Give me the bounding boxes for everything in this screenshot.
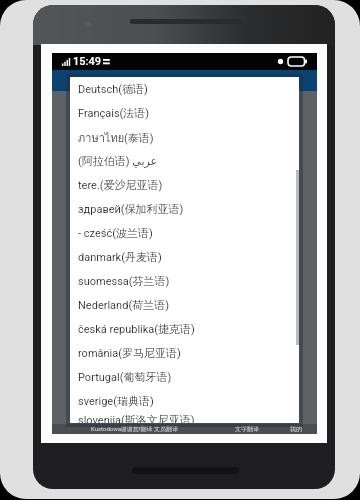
button[interactable]: românia(罗马尼亚语): [70, 341, 299, 365]
button[interactable]: 我的: [275, 424, 317, 434]
staticText: ภาษาไทย(泰语): [78, 129, 154, 146]
button[interactable]: česká republika(捷克语): [70, 317, 299, 341]
staticText: здравей(保加利亚语): [78, 202, 184, 216]
staticText: Deutsch(德语): [78, 82, 148, 96]
staticText: sverige(瑞典语): [78, 394, 154, 408]
staticText: česká republika(捷克语): [78, 322, 195, 336]
staticText: Portugal(葡萄牙语): [78, 370, 172, 384]
button[interactable]: ภาษาไทย(泰语): [70, 125, 299, 149]
staticText: Français(法语): [78, 106, 150, 120]
staticText: Kustodowa谢谢您!翻译 文员翻译: [91, 425, 179, 433]
button[interactable]: tere.(爱沙尼亚语): [70, 173, 299, 197]
button[interactable]: 文字翻译: [218, 424, 275, 434]
staticText: românia(罗马尼亚语): [78, 346, 181, 360]
button[interactable]: здравей(保加利亚语): [70, 197, 299, 221]
button[interactable]: danmark(丹麦语): [70, 245, 299, 269]
button[interactable]: Français(法语): [70, 101, 299, 125]
button[interactable]: Deutsch(德语): [70, 77, 299, 101]
button[interactable]: (阿拉伯语) عربي: [70, 149, 299, 173]
staticText: 我的: [290, 425, 302, 433]
staticText: 文字翻译: [235, 425, 259, 433]
button[interactable]: suomessa(芬兰语): [70, 269, 299, 293]
button[interactable]: Kustodowa谢谢您!翻译 文员翻译: [52, 424, 218, 434]
staticText: slovenija(斯洛文尼亚语): [78, 413, 195, 423]
staticText: Nederland(荷兰语): [78, 298, 169, 312]
button[interactable]: Portugal(葡萄牙语): [70, 365, 299, 389]
staticText: 15:49: [73, 55, 101, 68]
button[interactable]: slovenija(斯洛文尼亚语): [70, 413, 299, 423]
button[interactable]: Nederland(荷兰语): [70, 293, 299, 317]
button[interactable]: - cześć(波兰语): [70, 221, 299, 245]
staticText: suomessa(芬兰语): [78, 274, 170, 288]
staticText: danmark(丹麦语): [78, 250, 162, 264]
staticText: (阿拉伯语) عربي: [78, 154, 158, 168]
staticText: - cześć(波兰语): [78, 226, 153, 240]
button[interactable]: sverige(瑞典语): [70, 389, 299, 413]
staticText: tere.(爱沙尼亚语): [78, 178, 163, 192]
